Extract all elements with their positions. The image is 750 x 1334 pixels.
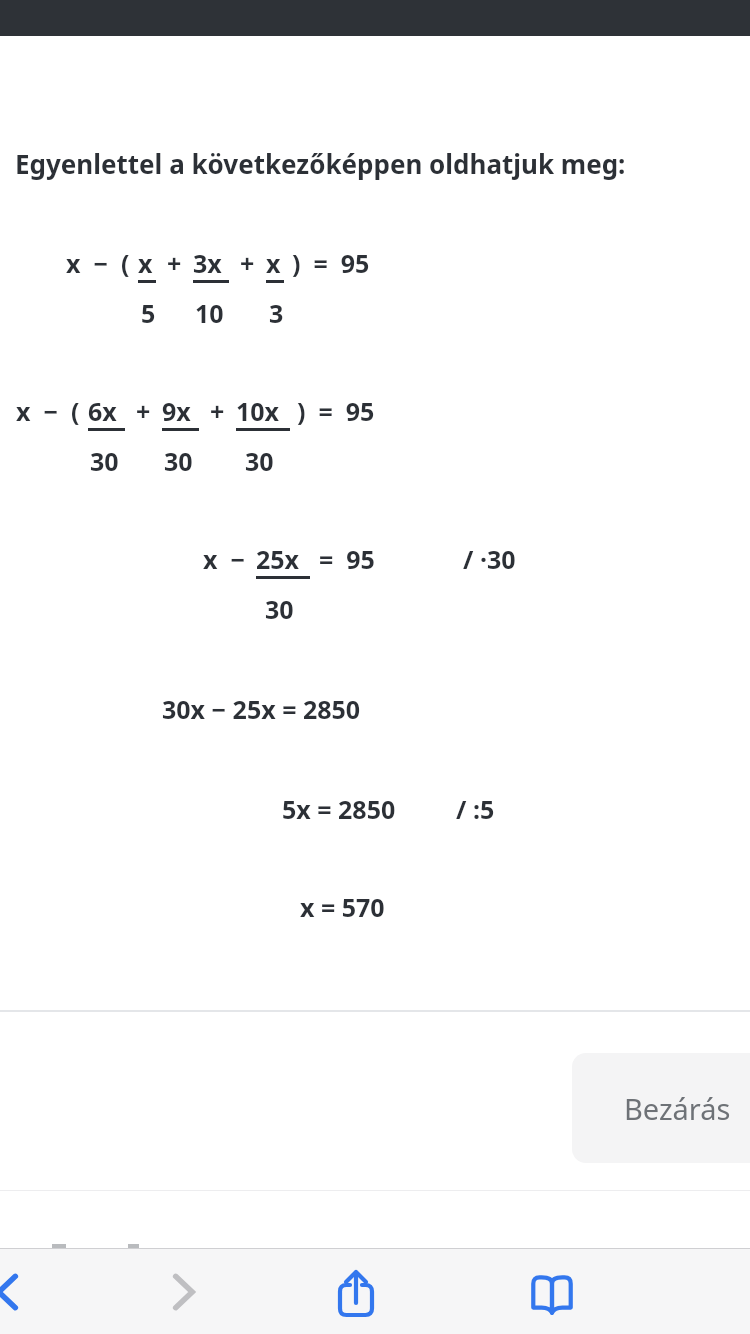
staticText: x − ( bbox=[66, 246, 130, 280]
staticText: 5 bbox=[141, 296, 156, 330]
staticText: 10x bbox=[236, 394, 280, 428]
staticText: 9x bbox=[162, 394, 191, 428]
staticText: + bbox=[210, 394, 225, 428]
staticText: 30x − 25x = 2850 bbox=[162, 692, 361, 726]
staticText: 3 bbox=[269, 296, 284, 330]
button[interactable]: Share bbox=[258, 1249, 454, 1334]
staticText: + bbox=[167, 246, 182, 280]
button[interactable]: Back bbox=[0, 1249, 108, 1334]
button[interactable]: Forward bbox=[108, 1249, 258, 1334]
staticText: = 95 bbox=[319, 542, 375, 576]
staticText: + bbox=[240, 246, 255, 280]
staticText: ) = 95 bbox=[292, 246, 370, 280]
staticText: x − ( bbox=[16, 394, 80, 428]
button[interactable]: Bookmarks bbox=[454, 1249, 650, 1334]
staticText: x bbox=[266, 246, 281, 280]
staticText: Egyenlettel a következőképpen oldhatjuk … bbox=[15, 146, 626, 181]
staticText: ) = 95 bbox=[297, 394, 375, 428]
staticText: 30 bbox=[265, 592, 294, 626]
staticText: 30 bbox=[164, 444, 193, 478]
staticText: 30 bbox=[245, 444, 274, 478]
staticText: 5x = 2850 bbox=[282, 792, 396, 826]
staticText: 25x bbox=[256, 542, 300, 576]
staticText: x = 570 bbox=[300, 890, 385, 924]
staticText: x − bbox=[203, 542, 245, 576]
staticText: 3x bbox=[193, 246, 222, 280]
staticText: x bbox=[138, 246, 153, 280]
staticText: Bezárás bbox=[624, 1089, 731, 1128]
staticText: 30 bbox=[90, 444, 119, 478]
staticText: / :5 bbox=[456, 792, 495, 826]
staticText: 6x bbox=[88, 394, 117, 428]
staticText: + bbox=[136, 394, 151, 428]
staticText: / ·30 bbox=[463, 542, 516, 576]
staticText: 10 bbox=[195, 296, 224, 330]
button[interactable]: Bezárás bbox=[572, 1053, 750, 1163]
